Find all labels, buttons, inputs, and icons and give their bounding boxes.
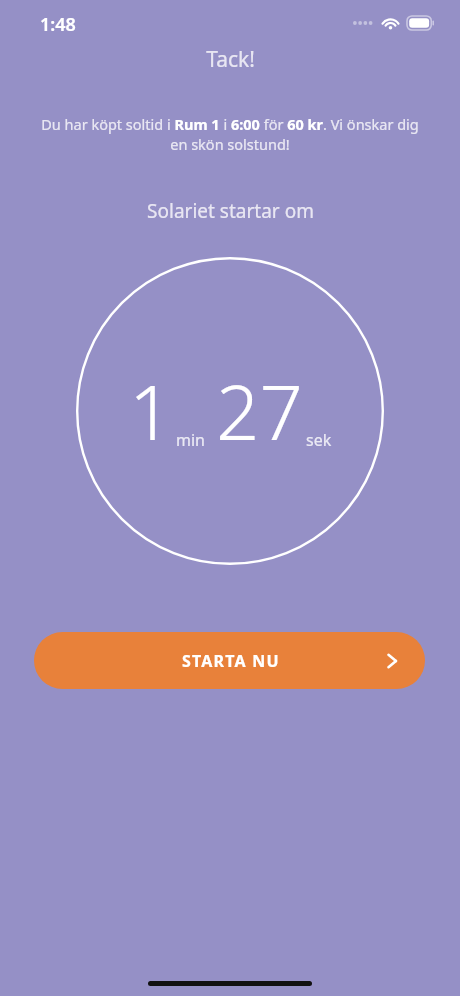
other: Start now	[381, 650, 403, 672]
staticText: Du har köpt soltid i Rum 1 i 6:00 för 60…	[38, 114, 422, 155]
staticText: 1:48	[40, 12, 76, 37]
staticText: 27	[216, 359, 303, 463]
staticText: Tack!	[206, 45, 255, 74]
staticText: min	[176, 429, 205, 451]
staticText: STARTA NU	[182, 650, 280, 672]
staticText: Solariet startar om	[147, 198, 314, 224]
staticText: 1	[129, 359, 173, 463]
button[interactable]: STARTA NU	[34, 632, 425, 689]
staticText: sek	[306, 429, 332, 451]
